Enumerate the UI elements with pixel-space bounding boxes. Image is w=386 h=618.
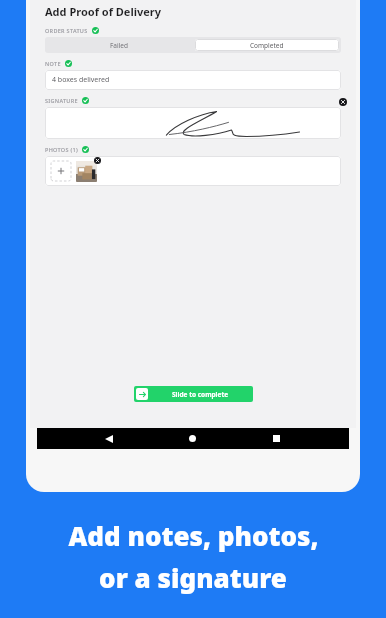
staticText: Add notes, photos,: [68, 518, 319, 553]
staticText: Failed: [110, 41, 129, 50]
button[interactable]: Failed: [45, 37, 193, 53]
staticText: Slide to complete: [172, 390, 229, 399]
staticText: 4 boxes delivered: [52, 75, 110, 85]
button[interactable]: Back: [98, 428, 120, 449]
staticText: NOTE: [45, 60, 61, 67]
staticText: SIGNATURE: [45, 97, 78, 104]
button[interactable]: Completed: [195, 39, 339, 51]
staticText: PHOTOS (1): [45, 146, 78, 153]
button[interactable]: Add photo: [51, 161, 71, 181]
button[interactable]: Slide to complete: [134, 386, 253, 402]
button[interactable]: Delivery photo: [76, 161, 97, 182]
button[interactable]: Home: [181, 428, 203, 449]
button[interactable]: Remove photo: [94, 157, 101, 164]
staticText: Add Proof of Delivery: [45, 4, 161, 19]
staticText: or a signature: [99, 560, 287, 595]
staticText: ORDER STATUS: [45, 27, 88, 34]
button[interactable]: 4 boxes delivered: [45, 70, 341, 90]
button[interactable]: Clear signature: [339, 98, 347, 106]
button[interactable]: [45, 107, 341, 139]
button[interactable]: Recents: [265, 428, 287, 449]
staticText: Completed: [250, 41, 284, 50]
